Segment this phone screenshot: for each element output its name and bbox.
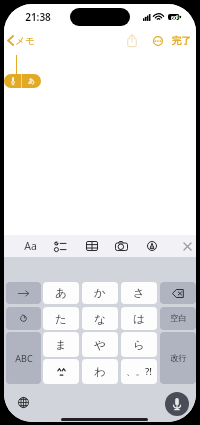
button[interactable]: Delete	[160, 282, 196, 304]
button[interactable]: ABC	[6, 332, 41, 384]
button[interactable]: Close keyboard	[179, 235, 195, 257]
button[interactable]: わ	[82, 359, 118, 384]
button[interactable]: ら	[121, 332, 157, 357]
staticText: は	[133, 312, 145, 326]
staticText: 60	[171, 14, 177, 20]
button[interactable]: 空白	[160, 307, 196, 330]
staticText: 、。?!	[126, 365, 152, 378]
button[interactable]: Dictate	[165, 392, 189, 416]
staticText: メモ	[15, 35, 35, 47]
button[interactable]: 、。?!	[121, 359, 157, 384]
staticText: わ	[94, 365, 106, 379]
staticText: か	[94, 286, 106, 300]
staticText: ま	[55, 338, 67, 352]
button[interactable]: た	[43, 307, 79, 330]
button[interactable]: 改行	[160, 332, 196, 384]
staticText: 完了	[172, 35, 191, 47]
staticText: 空白	[170, 313, 187, 324]
button[interactable]: 完了	[172, 33, 196, 48]
button[interactable]: Markup	[143, 235, 160, 257]
button[interactable]: Switch keyboard	[13, 392, 34, 413]
button[interactable]: か	[82, 282, 118, 304]
staticText: ら	[133, 338, 145, 352]
button[interactable]: Emoticon	[43, 359, 79, 384]
button[interactable]: Text format	[20, 235, 40, 257]
staticText: Aa	[24, 239, 37, 253]
staticText: あ	[55, 286, 67, 300]
button[interactable]: Checklist	[51, 235, 69, 257]
button[interactable]: More options	[152, 33, 164, 48]
staticText: や	[94, 338, 106, 352]
button[interactable]: Camera	[112, 235, 131, 257]
staticText: さ	[133, 286, 145, 300]
staticText: あ	[28, 77, 35, 85]
button[interactable]: さ	[121, 282, 157, 304]
button[interactable]: は	[121, 307, 157, 330]
button[interactable]: Next candidate	[6, 282, 41, 304]
button[interactable]: Table	[82, 235, 101, 257]
button[interactable]: メモ	[5, 33, 37, 48]
button[interactable]: や	[82, 332, 118, 357]
button[interactable]: な	[82, 307, 118, 330]
button[interactable]: Undo	[6, 307, 41, 330]
staticText: ABC	[15, 352, 33, 364]
staticText: 改行	[170, 353, 187, 364]
button[interactable]: ま	[43, 332, 79, 357]
staticText: 21:38	[25, 10, 51, 23]
staticText: た	[55, 312, 67, 326]
button[interactable]: Dictation language	[4, 74, 41, 88]
button[interactable]: あ	[43, 282, 79, 304]
staticText: な	[94, 312, 106, 326]
button[interactable]: Share	[125, 33, 139, 48]
